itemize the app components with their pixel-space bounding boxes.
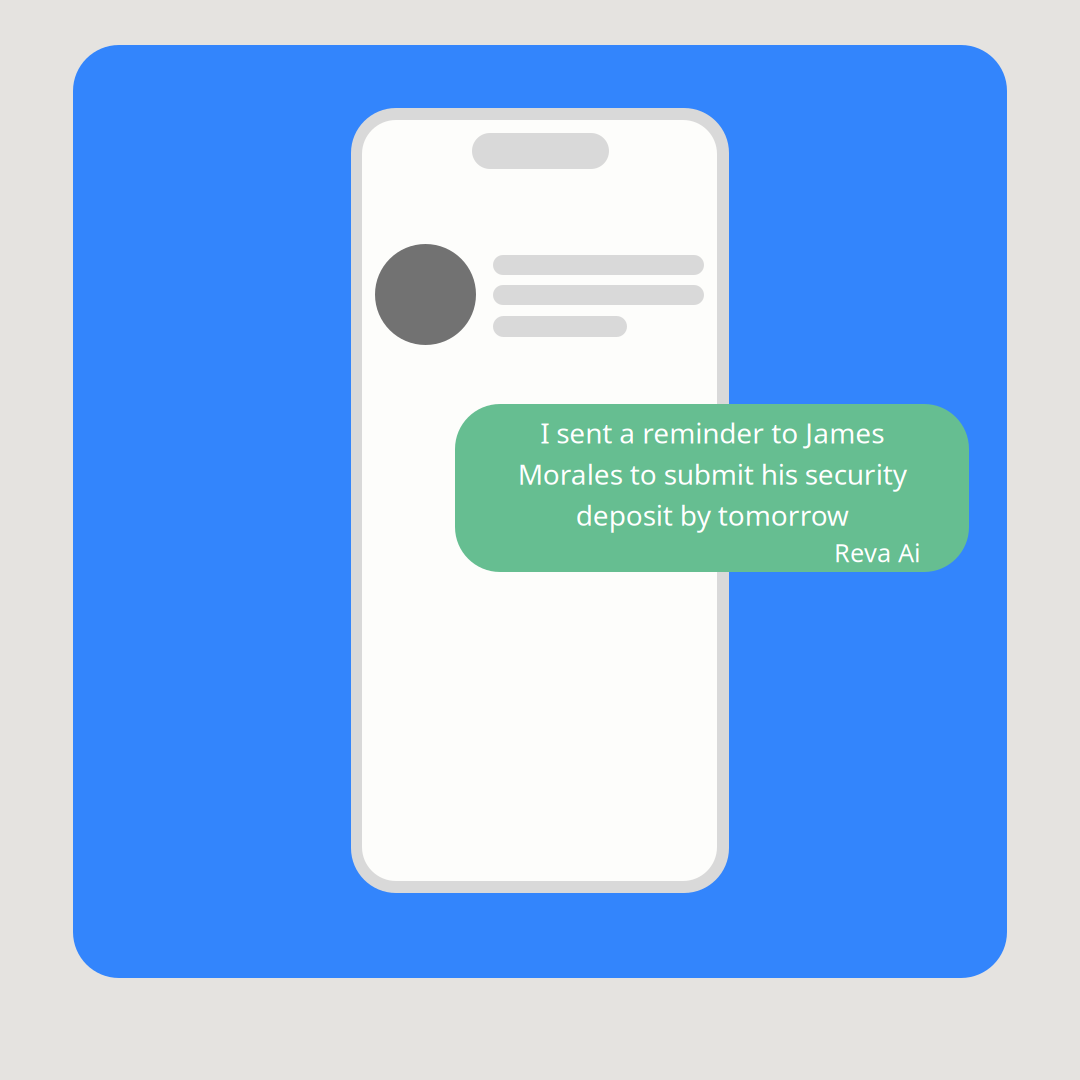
button[interactable]: I sent a reminder to James Morales to su… [455,404,969,572]
button[interactable]: Contact [375,244,704,345]
staticText: I sent a reminder to James Morales to su… [517,414,906,533]
staticText: Reva Ai [834,535,921,569]
